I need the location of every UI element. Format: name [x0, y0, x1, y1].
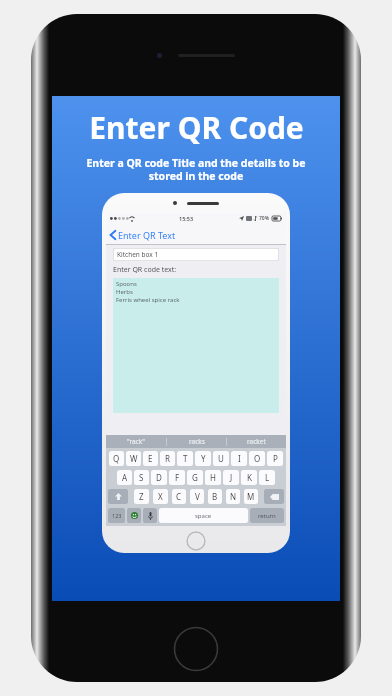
staticText: I: [238, 453, 241, 464]
staticText: X: [158, 491, 163, 502]
button[interactable]: Q: [109, 451, 124, 466]
staticText: 70%: [259, 215, 270, 222]
button[interactable]: Spoons Herbs Ferris wheel spice rack: [113, 278, 279, 413]
staticText: Z: [139, 491, 144, 502]
button[interactable]: return: [250, 508, 284, 523]
staticText: Spoons Herbs Ferris wheel spice rack: [116, 280, 180, 304]
button[interactable]: C: [172, 489, 186, 504]
button[interactable]: T: [177, 451, 193, 466]
button[interactable]: L: [259, 470, 275, 485]
staticText: O: [254, 453, 261, 464]
button[interactable]: J: [223, 470, 239, 485]
button[interactable]: N: [226, 489, 240, 504]
staticText: M: [247, 491, 255, 502]
staticText: return: [258, 512, 276, 520]
button[interactable]: K: [241, 470, 257, 485]
button[interactable]: Y: [195, 451, 211, 466]
button[interactable]: space: [159, 508, 248, 523]
staticText: A: [122, 472, 128, 483]
button[interactable]: W: [126, 451, 141, 466]
staticText: D: [156, 472, 162, 483]
button[interactable]: I: [231, 451, 247, 466]
button[interactable]: racket: [227, 435, 286, 448]
staticText: 15:53: [179, 215, 194, 222]
staticText: Enter QR Text: [118, 229, 176, 241]
staticText: "rack": [127, 437, 145, 446]
button[interactable]: B: [208, 489, 222, 504]
staticText: racks: [189, 437, 205, 446]
button[interactable]: O: [249, 451, 265, 466]
staticText: R: [165, 453, 170, 464]
button[interactable]: Key: [143, 508, 157, 523]
staticText: 123: [112, 512, 122, 519]
staticText: W: [130, 453, 138, 464]
button[interactable]: P: [267, 451, 283, 466]
button[interactable]: E: [143, 451, 158, 466]
staticText: Y: [201, 453, 206, 464]
button[interactable]: R: [160, 451, 175, 466]
staticText: Enter QR code text:: [113, 265, 177, 275]
staticText: B: [212, 491, 218, 502]
staticText: N: [230, 491, 237, 502]
button[interactable]: U: [213, 451, 229, 466]
staticText: V: [195, 491, 200, 502]
button[interactable]: Home: [173, 626, 219, 672]
button[interactable]: Enter QR Text: [106, 224, 286, 245]
button[interactable]: racks: [167, 435, 226, 448]
button[interactable]: X: [153, 489, 168, 504]
button[interactable]: S: [134, 470, 149, 485]
staticText: C: [176, 491, 182, 502]
button[interactable]: Key: [108, 508, 125, 523]
button[interactable]: "rack": [106, 435, 166, 448]
staticText: L: [265, 472, 270, 483]
staticText: Kitchen box 1: [117, 250, 159, 259]
button[interactable]: Kitchen box 1: [113, 248, 279, 261]
button[interactable]: A: [117, 470, 132, 485]
staticText: F: [175, 472, 180, 483]
staticText: S: [139, 472, 144, 483]
staticText: E: [148, 453, 153, 464]
button[interactable]: Key: [108, 489, 128, 504]
button[interactable]: Key: [127, 508, 141, 523]
button[interactable]: Z: [134, 489, 149, 504]
staticText: K: [247, 472, 252, 483]
staticText: Q: [113, 453, 120, 464]
staticText: racket: [247, 437, 266, 446]
staticText: T: [183, 453, 188, 464]
staticText: space: [195, 512, 212, 520]
staticText: U: [218, 453, 224, 464]
button[interactable]: H: [205, 470, 221, 485]
button[interactable]: F: [169, 470, 185, 485]
button[interactable]: V: [190, 489, 204, 504]
staticText: Enter QR Code: [89, 107, 304, 148]
button[interactable]: Key: [264, 489, 284, 504]
staticText: P: [273, 453, 278, 464]
staticText: Enter a QR code Title and the details to…: [86, 156, 306, 183]
staticText: G: [192, 472, 198, 483]
button[interactable]: D: [151, 470, 167, 485]
button[interactable]: M: [244, 489, 258, 504]
staticText: H: [210, 472, 216, 483]
staticText: J: [230, 472, 233, 483]
button[interactable]: G: [187, 470, 203, 485]
